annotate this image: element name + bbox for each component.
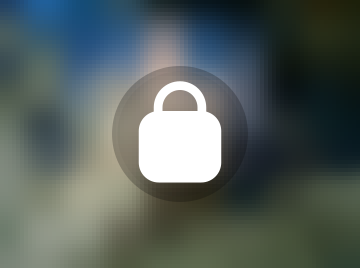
button[interactable]: Unlock xyxy=(0,0,360,268)
